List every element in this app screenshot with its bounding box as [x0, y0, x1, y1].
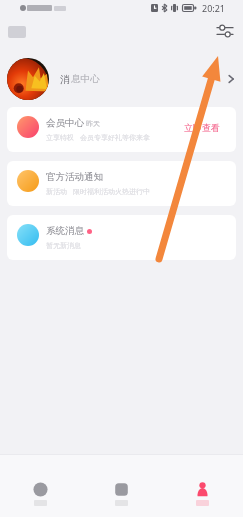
button[interactable]: Profile — [162, 455, 243, 517]
staticText: 会员中心 — [46, 117, 84, 129]
staticText: 暂无新消息 — [46, 241, 81, 250]
button[interactable]: Home — [0, 455, 81, 517]
button[interactable]: 系统消息 — [7, 215, 236, 260]
staticText: 立享特权 — [46, 133, 74, 142]
staticText: 息中心 — [71, 73, 100, 85]
button[interactable]: Discover — [81, 455, 162, 517]
button[interactable]: View now — [184, 122, 220, 133]
staticText: 新活动 — [46, 187, 67, 196]
staticText: 20:21 — [202, 2, 226, 14]
staticText: 昨天 — [86, 119, 100, 128]
button[interactable]: 消 — [0, 46, 243, 112]
staticText: 消 — [60, 73, 70, 86]
staticText: 系统消息 — [46, 225, 84, 237]
button[interactable]: 官方活动通知 — [7, 161, 236, 206]
staticText: 限时福利活动火热进行中 — [73, 187, 150, 196]
button[interactable]: Title — [8, 26, 26, 38]
button[interactable]: 会员中心 — [7, 107, 236, 152]
staticText: 官方活动通知 — [46, 171, 103, 183]
staticText: 会员专享好礼等你来拿 — [80, 133, 150, 142]
other: More — [222, 70, 240, 88]
staticText: 立即查看 — [184, 122, 220, 133]
button[interactable]: Filter settings — [213, 19, 237, 43]
